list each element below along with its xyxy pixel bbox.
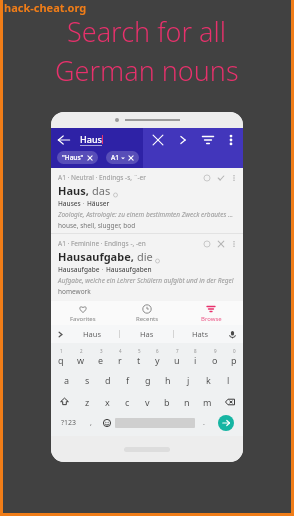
button[interactable]: 4: [110, 345, 129, 368]
staticText: German nouns: [55, 52, 239, 89]
staticText: 6: [156, 348, 159, 354]
button[interactable]: Enter: [218, 415, 234, 431]
button[interactable]: Expand: [56, 330, 65, 339]
button[interactable]: d: [98, 368, 118, 391]
button[interactable]: z: [77, 391, 97, 412]
button[interactable]: 2: [71, 345, 91, 368]
staticText: s: [85, 374, 90, 386]
staticText: m: [203, 396, 212, 408]
button[interactable]: l: [218, 368, 238, 391]
button[interactable]: v: [137, 391, 157, 412]
button[interactable]: 8: [186, 345, 205, 368]
button[interactable]: x: [97, 391, 117, 412]
button[interactable]: h: [158, 368, 178, 391]
staticText: b: [164, 396, 170, 408]
staticText: g: [145, 374, 151, 386]
staticText: 7: [176, 348, 179, 354]
staticText: h: [165, 374, 171, 386]
staticText: 4: [119, 348, 122, 354]
button[interactable]: Recents: [115, 301, 179, 325]
button[interactable]: More options: [224, 133, 238, 147]
button[interactable]: .: [195, 412, 212, 434]
button[interactable]: Has: [120, 325, 173, 343]
button[interactable]: ?123: [54, 412, 83, 434]
button[interactable]: A1 · Neutral · Endings -s, ¨-er: [51, 168, 243, 230]
staticText: 3: [100, 348, 103, 354]
button[interactable]: ,: [83, 412, 98, 434]
staticText: e: [98, 354, 104, 366]
button[interactable]: Bookmark: [203, 174, 211, 182]
staticText: Hats: [192, 329, 209, 339]
button[interactable]: Next: [176, 133, 190, 147]
staticText: i: [194, 354, 197, 366]
button[interactable]: A1 · Feminine · Endings -, -en: [51, 234, 243, 296]
staticText: A1 · Feminine · Endings -, -en: [58, 239, 146, 248]
button[interactable]: Filter: [201, 133, 215, 147]
staticText: ·: [100, 265, 106, 274]
staticText: Browse: [201, 315, 222, 323]
button[interactable]: Bookmark: [203, 240, 211, 248]
staticText: c: [125, 396, 130, 408]
button[interactable]: Shift: [51, 391, 77, 412]
button[interactable]: Emoji: [98, 412, 115, 434]
button[interactable]: Remove: [217, 240, 225, 248]
button[interactable]: Favorites: [51, 301, 115, 325]
staticText: Zoologie, Astrologie: zu einem bestimmte…: [58, 210, 233, 219]
button[interactable]: Voice input: [227, 329, 238, 340]
staticText: Hauses: [58, 199, 81, 208]
button[interactable]: Haus: [65, 325, 119, 343]
button[interactable]: a: [56, 368, 77, 391]
button[interactable]: m: [197, 391, 217, 412]
staticText: Haus: [83, 329, 101, 339]
staticText: o: [212, 354, 218, 366]
staticText: Search for all: [67, 13, 227, 50]
staticText: house, shell, slugger, bod: [58, 221, 136, 230]
staticText: ,: [90, 418, 92, 428]
staticText: A1 · Neutral · Endings -s, ¨-er: [58, 173, 146, 182]
staticText: .: [203, 418, 205, 428]
button[interactable]: 0: [224, 345, 243, 368]
staticText: Favorites: [70, 315, 96, 323]
button[interactable]: More: [230, 174, 238, 182]
button[interactable]: 5: [129, 345, 148, 368]
button[interactable]: 9: [205, 345, 224, 368]
button[interactable]: f: [118, 368, 138, 391]
staticText: 0: [233, 348, 236, 354]
staticText: u: [174, 354, 180, 366]
staticText: ?123: [61, 418, 77, 428]
staticText: 5: [138, 348, 141, 354]
button[interactable]: 6: [148, 345, 167, 368]
staticText: d: [105, 374, 111, 386]
button[interactable]: "Haus": [57, 151, 98, 164]
button[interactable]: c: [117, 391, 137, 412]
staticText: Häuser: [87, 199, 110, 208]
button[interactable]: 7: [167, 345, 186, 368]
staticText: v: [145, 396, 150, 408]
staticText: x: [105, 396, 110, 408]
button[interactable]: 3: [91, 345, 110, 368]
staticText: t: [137, 354, 141, 366]
staticText: 8: [194, 348, 197, 354]
button[interactable]: Backspace: [217, 391, 243, 412]
button[interactable]: b: [157, 391, 177, 412]
button[interactable]: Browse: [179, 301, 243, 325]
button[interactable]: 1: [51, 345, 71, 368]
button[interactable]: n: [177, 391, 197, 412]
staticText: r: [118, 354, 122, 366]
button[interactable]: Back: [56, 132, 72, 148]
staticText: f: [126, 374, 130, 386]
button[interactable]: j: [178, 368, 198, 391]
button[interactable]: k: [198, 368, 218, 391]
staticText: y: [155, 354, 160, 366]
button[interactable]: More: [230, 240, 238, 248]
button[interactable]: Clear: [151, 133, 165, 147]
button[interactable]: Hats: [174, 325, 227, 343]
button[interactable]: s: [77, 368, 98, 391]
button[interactable]: Known: [217, 174, 225, 182]
button[interactable]: A1: [106, 151, 139, 164]
staticText: Hausaufgaben: [106, 265, 152, 274]
button[interactable]: g: [138, 368, 158, 391]
staticText: n: [184, 396, 190, 408]
staticText: Hausaufgabe: [58, 265, 100, 274]
